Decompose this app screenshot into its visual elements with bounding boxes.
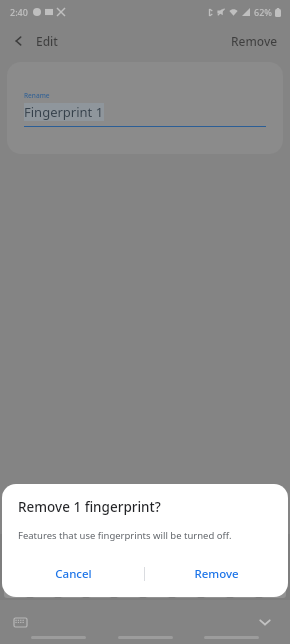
- button[interactable]: Hide keyboard: [252, 609, 278, 635]
- staticText: Rename: [24, 91, 50, 100]
- staticText: Cancel: [54, 510, 91, 525]
- staticText: Remove: [231, 33, 278, 49]
- button[interactable]: T: [116, 572, 141, 598]
- button[interactable]: Remove: [145, 555, 288, 593]
- staticText: 62%: [254, 6, 272, 18]
- button[interactable]: O: [232, 572, 257, 598]
- staticText: Remove: [194, 566, 239, 582]
- button[interactable]: R: [88, 572, 112, 598]
- button[interactable]: A: [4, 603, 28, 629]
- button[interactable]: Y: [145, 572, 170, 598]
- staticText: Fingerprint 1: [24, 103, 104, 121]
- staticText: Remove 1 fingerprint?: [18, 498, 161, 516]
- button[interactable]: I: [203, 572, 228, 598]
- staticText: A: [12, 609, 20, 624]
- button[interactable]: ·: [261, 603, 286, 629]
- button[interactable]: Fingerprint 1: [24, 103, 104, 121]
- button[interactable]: Cancel: [36, 504, 109, 531]
- button[interactable]: Back: [0, 33, 66, 49]
- button[interactable]: Remove: [219, 33, 290, 49]
- staticText: Cancel: [55, 566, 92, 582]
- button[interactable]: E: [60, 572, 84, 598]
- button[interactable]: Keyboard: [8, 612, 33, 633]
- button[interactable]: Q: [4, 572, 28, 598]
- button[interactable]: U: [174, 572, 199, 598]
- staticText: Features that use fingerprints will be t…: [18, 529, 232, 542]
- button[interactable]: Cancel: [2, 555, 144, 593]
- button[interactable]: W: [32, 572, 56, 598]
- other: Back: [12, 34, 26, 48]
- staticText: 2:40: [10, 6, 28, 18]
- button[interactable]: P: [261, 572, 286, 598]
- staticText: Edit: [36, 33, 58, 49]
